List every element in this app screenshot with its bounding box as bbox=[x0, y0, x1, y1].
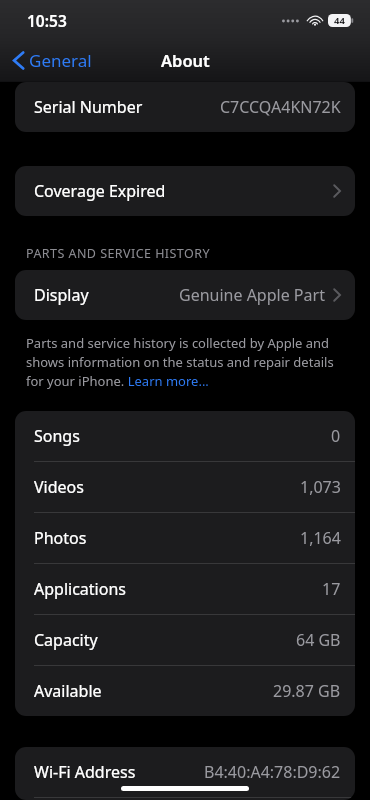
staticText: Wi-Fi Address bbox=[34, 761, 136, 783]
staticText: PARTS AND SERVICE HISTORY bbox=[26, 245, 210, 262]
button[interactable]: Applications bbox=[15, 564, 355, 614]
staticText: Available bbox=[34, 680, 102, 702]
button[interactable]: Serial Number bbox=[15, 82, 355, 132]
staticText: Coverage Expired bbox=[34, 180, 166, 202]
staticText: 17 bbox=[322, 578, 341, 600]
staticText: About bbox=[161, 49, 210, 71]
staticText: Songs bbox=[34, 425, 80, 447]
staticText: 0 bbox=[331, 425, 341, 447]
staticText: 44 bbox=[334, 14, 345, 27]
button[interactable]: Songs bbox=[15, 411, 355, 461]
staticText: Parts and service history is collected b… bbox=[26, 334, 344, 390]
staticText: Videos bbox=[34, 476, 84, 498]
staticText: Applications bbox=[34, 578, 126, 600]
staticText: B4:40:A4:78:D9:62 bbox=[204, 761, 341, 783]
button[interactable]: Capacity bbox=[15, 615, 355, 665]
button[interactable]: Coverage Expired bbox=[15, 166, 355, 216]
staticText: 64 GB bbox=[296, 629, 341, 651]
button[interactable]: Wi-Fi Address bbox=[15, 747, 355, 797]
staticText: Serial Number bbox=[34, 96, 143, 118]
button[interactable]: Bluetooth bbox=[15, 798, 355, 800]
staticText: 1,164 bbox=[300, 527, 341, 549]
staticText: Display bbox=[34, 284, 89, 306]
staticText: 29.87 GB bbox=[273, 680, 341, 702]
button[interactable]: Display bbox=[15, 270, 355, 320]
staticText: Genuine Apple Part bbox=[179, 284, 325, 306]
button[interactable]: Photos bbox=[15, 513, 355, 563]
button[interactable]: Videos bbox=[15, 462, 355, 512]
staticText: 1,073 bbox=[300, 476, 341, 498]
staticText: General bbox=[29, 49, 92, 72]
staticText: C7CCQA4KN72K bbox=[220, 96, 341, 118]
staticText: Photos bbox=[34, 527, 87, 549]
button[interactable]: Available bbox=[15, 666, 355, 716]
staticText: 10:53 bbox=[27, 10, 67, 31]
button[interactable]: Back to General bbox=[8, 44, 97, 77]
staticText: Capacity bbox=[34, 629, 98, 651]
